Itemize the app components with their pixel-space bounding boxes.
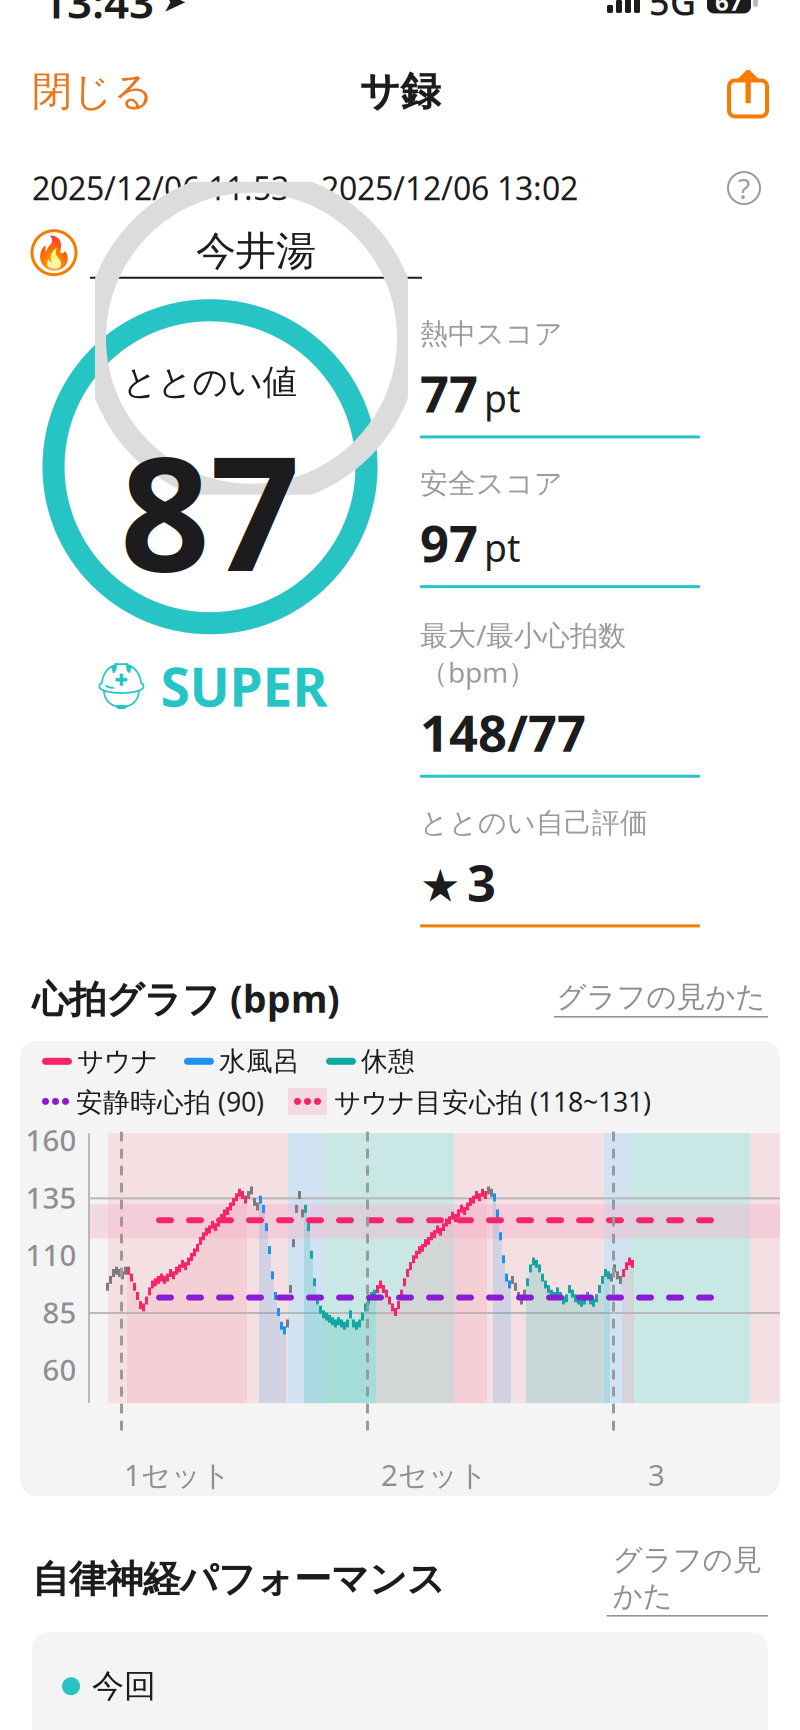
staticText: 今回 — [92, 1667, 156, 1706]
button[interactable]: グラフの見かた — [554, 979, 768, 1017]
staticText: 135 — [25, 1178, 76, 1217]
staticText: 安静時心拍 (90) — [76, 1084, 264, 1119]
staticText: 160 — [25, 1120, 76, 1159]
button[interactable]: 共有 — [696, 57, 800, 125]
staticText: 3 — [648, 1455, 665, 1494]
staticText: グラフの見かた — [556, 979, 765, 1015]
staticText: 77 — [420, 359, 478, 426]
staticText: 1セット — [124, 1455, 231, 1494]
staticText: 2セット — [381, 1455, 488, 1494]
staticText: 148/77 — [420, 698, 586, 766]
button[interactable]: 閉じる — [0, 53, 186, 130]
staticText: 60 — [42, 1350, 76, 1389]
button[interactable]: グラフの見かた — [606, 1542, 768, 1617]
staticText: 最大/最小心拍数（bpm） — [420, 616, 626, 690]
staticText: 🔥 — [34, 234, 74, 271]
staticText: グラフの見かた — [613, 1542, 762, 1614]
staticText: 安全スコア — [420, 466, 563, 501]
staticText: ↑ — [729, 62, 767, 113]
staticText: pt — [484, 523, 520, 572]
staticText: ★ — [420, 860, 461, 911]
staticText: サウナ目安心拍 (118~131) — [334, 1084, 651, 1119]
staticText: ➤ — [162, 0, 187, 18]
staticText: 熱中スコア — [420, 317, 563, 351]
staticText: 3 — [467, 848, 496, 915]
staticText: サ録 — [359, 67, 440, 116]
staticText: 5G — [649, 0, 696, 25]
staticText: 休憩 — [361, 1045, 415, 1078]
staticText: サウナ — [77, 1045, 158, 1078]
button[interactable]: 🔥 — [0, 215, 800, 285]
staticText: 閉じる — [32, 67, 154, 116]
button[interactable]: ヘルプ — [720, 161, 768, 215]
staticText: 2025/12/06 11:53〜2025/12/06 13:02 — [32, 167, 578, 209]
staticText: 今井湯 — [196, 227, 316, 276]
staticText: 87 — [120, 406, 300, 614]
staticText: ととのい自己評価 — [420, 806, 648, 840]
staticText: 水風呂 — [219, 1045, 300, 1078]
staticText: ととのい値 — [122, 361, 297, 404]
staticText: 97 — [420, 509, 478, 576]
staticText: 13:43 — [42, 0, 154, 31]
staticText: 心拍グラフ (bpm) — [32, 973, 340, 1023]
staticText: ? — [738, 169, 750, 207]
staticText: SUPER — [160, 651, 327, 722]
staticText: 自律神経パフォーマンス — [32, 1556, 445, 1602]
staticText: pt — [484, 373, 520, 423]
staticText: ⛑ — [92, 660, 150, 712]
staticText: 67 — [715, 0, 743, 17]
staticText: 110 — [25, 1235, 76, 1274]
staticText: 85 — [42, 1292, 76, 1331]
